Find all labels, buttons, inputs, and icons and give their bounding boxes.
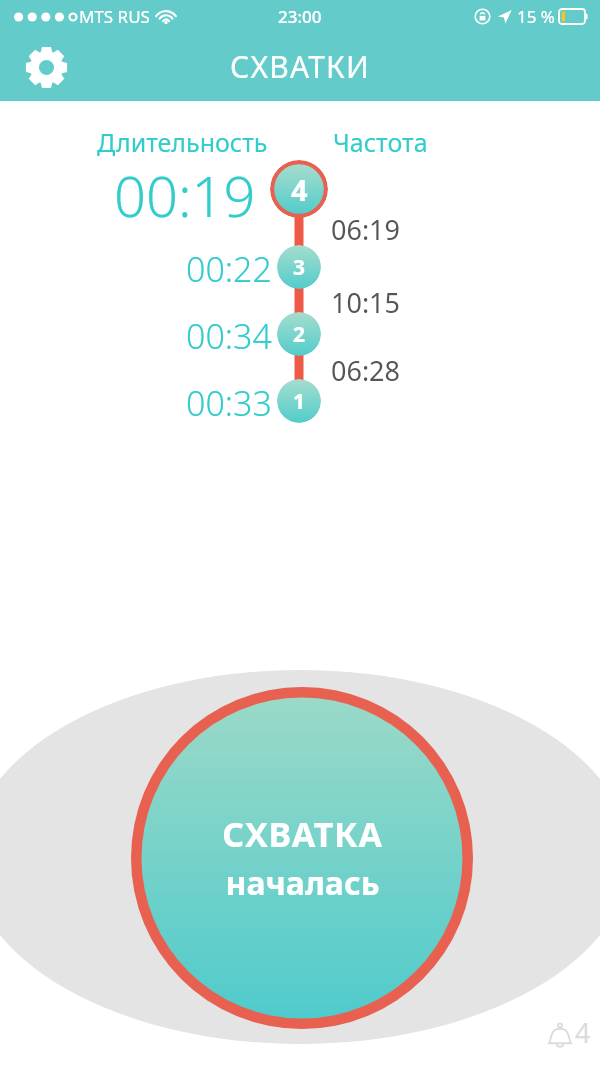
staticText: 00:33 (186, 380, 272, 422)
button[interactable]: 06:28 (331, 352, 401, 389)
staticText: 23:00 (278, 5, 322, 28)
staticText: СХВАТКА (222, 811, 383, 857)
button[interactable]: 4 (270, 160, 328, 218)
button[interactable]: 10:15 (331, 284, 401, 321)
staticText: 2 (293, 320, 306, 349)
button[interactable]: 00:33 (100, 380, 272, 422)
button[interactable]: Notifications (545, 1015, 591, 1052)
button[interactable]: Settings (21, 42, 71, 92)
button[interactable]: 3 (277, 245, 321, 289)
staticText: Частота (333, 125, 428, 159)
staticText: 00:19 (114, 157, 256, 223)
button[interactable]: 00:22 (100, 246, 272, 288)
button[interactable]: СХВАТКА (131, 687, 473, 1029)
staticText: 3 (293, 253, 306, 282)
button[interactable]: 2 (277, 312, 321, 356)
staticText: MTS RUS (79, 5, 150, 28)
staticText: 4 (291, 170, 308, 209)
staticText: Длительность (97, 125, 268, 159)
other: Notifications (545, 1022, 575, 1052)
staticText: 00:34 (186, 313, 272, 355)
staticText: 1 (293, 387, 306, 416)
staticText: СХВАТКИ (230, 46, 370, 87)
staticText: началась (225, 861, 380, 905)
button[interactable]: 06:19 (331, 211, 401, 248)
staticText: 00:22 (186, 246, 272, 288)
button[interactable]: 1 (277, 379, 321, 423)
button[interactable]: 00:19 (60, 157, 256, 223)
staticText: 4 (575, 1014, 591, 1051)
button[interactable]: 00:34 (100, 313, 272, 355)
staticText: 15 % (517, 5, 555, 28)
